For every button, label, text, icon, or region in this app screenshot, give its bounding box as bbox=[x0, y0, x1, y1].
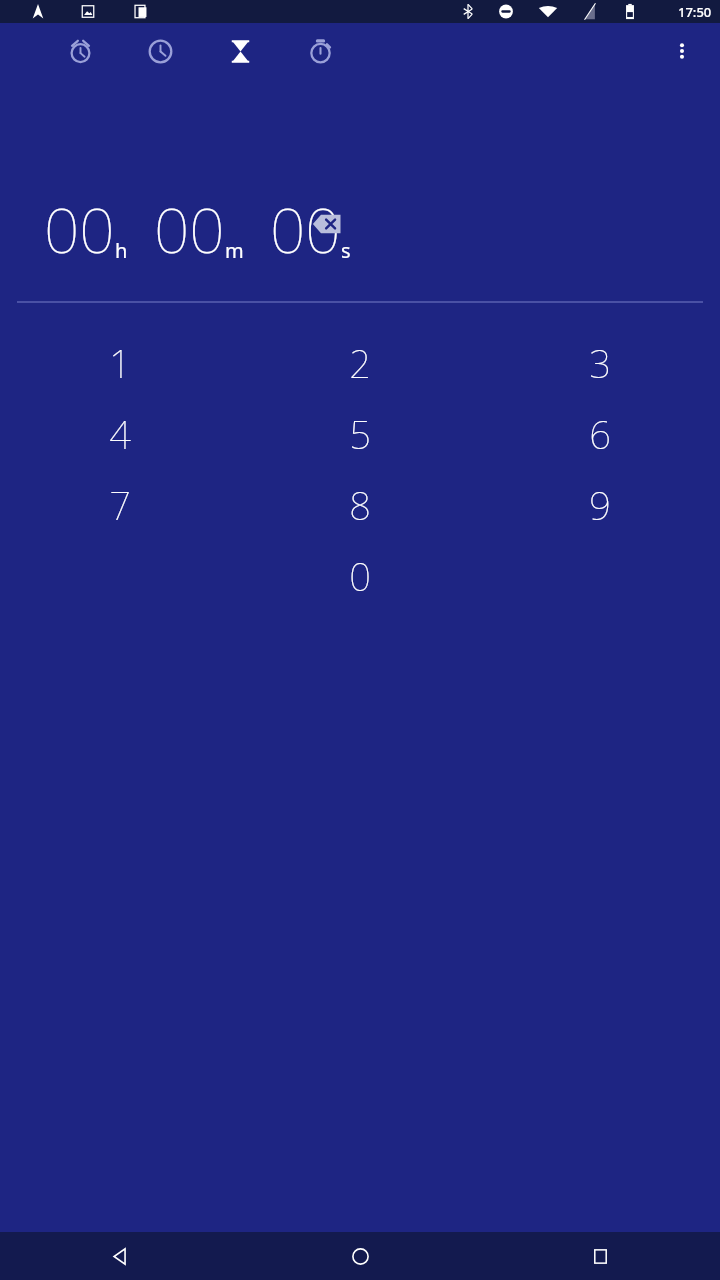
staticText: 0 bbox=[349, 550, 371, 602]
button[interactable]: Alarm bbox=[56, 27, 104, 75]
button[interactable]: 9 bbox=[480, 469, 720, 540]
button[interactable]: Delete bbox=[303, 200, 351, 248]
button[interactable]: Stopwatch bbox=[296, 27, 344, 75]
button[interactable]: Home bbox=[240, 1232, 480, 1280]
staticText: s bbox=[341, 237, 351, 264]
staticText: 9 bbox=[589, 479, 611, 531]
staticText: 00 bbox=[154, 187, 225, 271]
staticText: 17:50 bbox=[678, 3, 712, 21]
button[interactable]: Recent apps bbox=[480, 1232, 720, 1280]
staticText: 2 bbox=[349, 337, 371, 389]
staticText: 8 bbox=[349, 479, 371, 531]
staticText: 1 bbox=[109, 337, 131, 389]
button[interactable]: 6 bbox=[480, 398, 720, 469]
button[interactable]: More options bbox=[662, 31, 702, 71]
staticText: 5 bbox=[349, 408, 371, 460]
staticText: 00 bbox=[270, 187, 341, 271]
button[interactable]: Back bbox=[0, 1232, 240, 1280]
button[interactable]: Clock bbox=[136, 27, 184, 75]
staticText: 6 bbox=[589, 408, 611, 460]
button[interactable]: 3 bbox=[480, 327, 720, 398]
staticText: 3 bbox=[589, 337, 611, 389]
button[interactable]: 1 bbox=[0, 327, 240, 398]
staticText: m bbox=[225, 237, 244, 264]
staticText: h bbox=[115, 237, 128, 264]
button[interactable]: 2 bbox=[240, 327, 480, 398]
button[interactable]: 5 bbox=[240, 398, 480, 469]
button[interactable]: 8 bbox=[240, 469, 480, 540]
staticText: 4 bbox=[109, 408, 131, 460]
button[interactable]: 0 bbox=[240, 540, 480, 611]
button[interactable]: 4 bbox=[0, 398, 240, 469]
button[interactable]: 7 bbox=[0, 469, 240, 540]
staticText: 7 bbox=[109, 479, 131, 531]
button[interactable]: Timer bbox=[216, 27, 264, 75]
staticText: 00 bbox=[44, 187, 115, 271]
